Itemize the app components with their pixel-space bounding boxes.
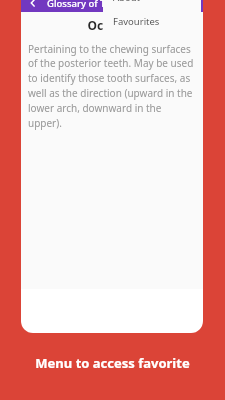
staticText: Favourites — [113, 15, 160, 28]
button[interactable]: Favourites — [103, 8, 201, 34]
staticText: About — [113, 0, 140, 4]
button[interactable]: Back — [25, 0, 39, 10]
staticText: Occlusal — [87, 17, 138, 33]
staticText: Pertaining to the chewing surfaces of th… — [28, 42, 197, 130]
staticText: Menu to access favorite — [35, 354, 190, 372]
button[interactable]: About — [103, 0, 201, 8]
staticText: Glossary of Terms — [47, 0, 128, 10]
